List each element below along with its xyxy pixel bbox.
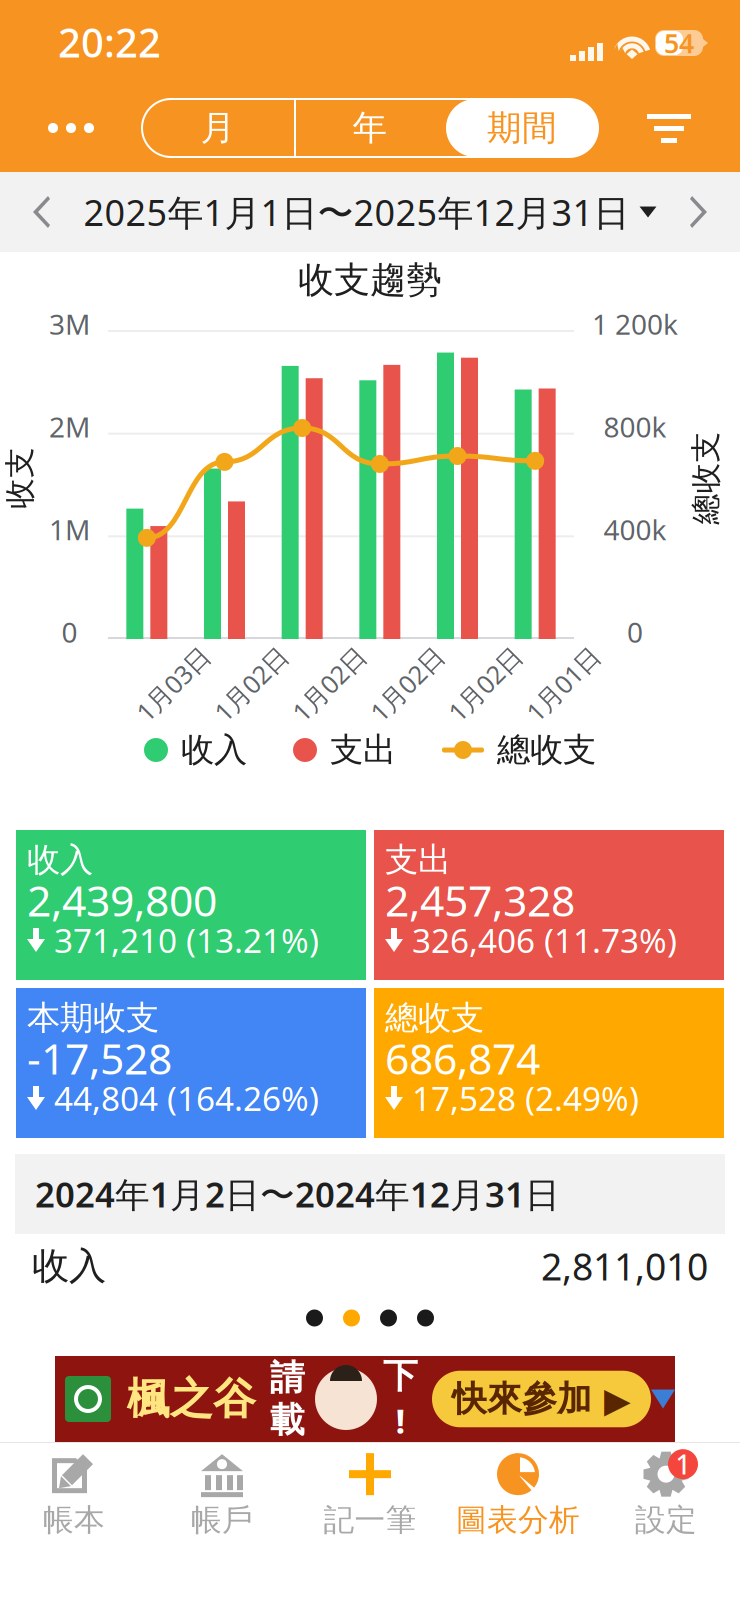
button[interactable]: 1 — [592, 1446, 740, 1542]
staticText: 3M — [49, 305, 90, 343]
staticText: 請 — [270, 1356, 305, 1399]
staticText: 支出 — [330, 729, 396, 770]
staticText: ! — [395, 1397, 405, 1443]
button[interactable]: Previous period — [0, 172, 83, 252]
button[interactable]: 支出 — [374, 830, 724, 980]
button[interactable]: 記一筆 — [296, 1446, 444, 1542]
staticText: 總收支 — [497, 729, 596, 770]
staticText: 2025年1月1日〜2025年12月31日 — [83, 188, 629, 236]
button[interactable]: 2025年1月1日〜2025年12月31日 — [83, 172, 656, 252]
staticText: 2024年1月2日〜2024年12月31日 — [35, 1171, 560, 1217]
staticText: 0 — [61, 613, 77, 651]
staticText: 17,528 (2.49%) — [412, 1076, 639, 1120]
staticText: 總收支 — [385, 997, 484, 1038]
staticText: 期間 — [487, 107, 557, 149]
button[interactable]: 收入 — [0, 1234, 740, 1298]
button[interactable]: 帳戶 — [148, 1446, 296, 1542]
staticText: 設定 — [635, 1501, 697, 1539]
button[interactable]: 本期收支 — [16, 988, 366, 1138]
staticText: 326,406 (11.73%) — [412, 918, 677, 962]
button[interactable]: 月 — [142, 99, 294, 157]
staticText: 1月02日 — [205, 667, 297, 701]
button[interactable]: More options — [0, 84, 142, 172]
staticText: 支出 — [385, 839, 451, 880]
staticText: 收支趨勢 — [298, 258, 442, 302]
button[interactable]: 圖表分析 — [444, 1446, 592, 1542]
staticText: 0 — [627, 613, 643, 651]
staticText: 帳戶 — [191, 1501, 253, 1539]
button[interactable]: 期間 — [446, 99, 598, 157]
button[interactable]: 總收支 — [374, 988, 724, 1138]
staticText: 月 — [200, 107, 235, 149]
staticText: 1月03日 — [127, 667, 219, 701]
staticText: 1月02日 — [439, 667, 531, 701]
staticText: 收入 — [181, 729, 247, 770]
button[interactable]: Advertisement — [60, 1356, 680, 1442]
staticText: 收入 — [32, 1243, 106, 1289]
staticText: 帳本 — [43, 1501, 105, 1539]
staticText: 收支 — [0, 459, 51, 497]
staticText: 1 — [675, 1446, 690, 1482]
staticText: -17,528 — [27, 1030, 172, 1086]
button[interactable]: Next period — [656, 172, 740, 252]
staticText: 總收支 — [659, 459, 740, 497]
button[interactable]: 年 — [294, 99, 446, 157]
staticText: 楓之谷 — [127, 1373, 256, 1425]
staticText: 2,439,800 — [27, 872, 217, 928]
staticText: 記一筆 — [323, 1501, 416, 1539]
button[interactable]: 帳本 — [0, 1446, 148, 1542]
staticText: 1月02日 — [361, 667, 453, 701]
staticText: 下 — [383, 1355, 418, 1397]
staticText: 20:22 — [58, 15, 161, 68]
staticText: 收入 — [27, 839, 93, 880]
button[interactable]: Filter — [598, 84, 740, 172]
staticText: 圖表分析 — [456, 1501, 580, 1539]
staticText: 載 — [270, 1399, 305, 1442]
staticText: 400k — [603, 511, 666, 548]
staticText: 1M — [49, 511, 90, 548]
staticText: 1月02日 — [283, 667, 375, 701]
staticText: 1月01日 — [517, 667, 609, 701]
staticText: 800k — [603, 408, 666, 445]
staticText: 686,874 — [385, 1030, 540, 1086]
staticText: 44,804 (164.26%) — [54, 1076, 319, 1120]
button[interactable]: 收入 — [16, 830, 366, 980]
staticText: 371,210 (13.21%) — [54, 918, 319, 962]
staticText: 2,811,010 — [541, 1241, 708, 1291]
staticText: 1 200k — [592, 305, 678, 343]
staticText: 本期收支 — [27, 997, 159, 1038]
staticText: 2M — [49, 408, 90, 445]
staticText: 快來參加 ▶ — [452, 1378, 631, 1420]
staticText: 54 — [664, 25, 694, 61]
staticText: 年 — [352, 107, 387, 149]
staticText: 2,457,328 — [385, 872, 575, 928]
